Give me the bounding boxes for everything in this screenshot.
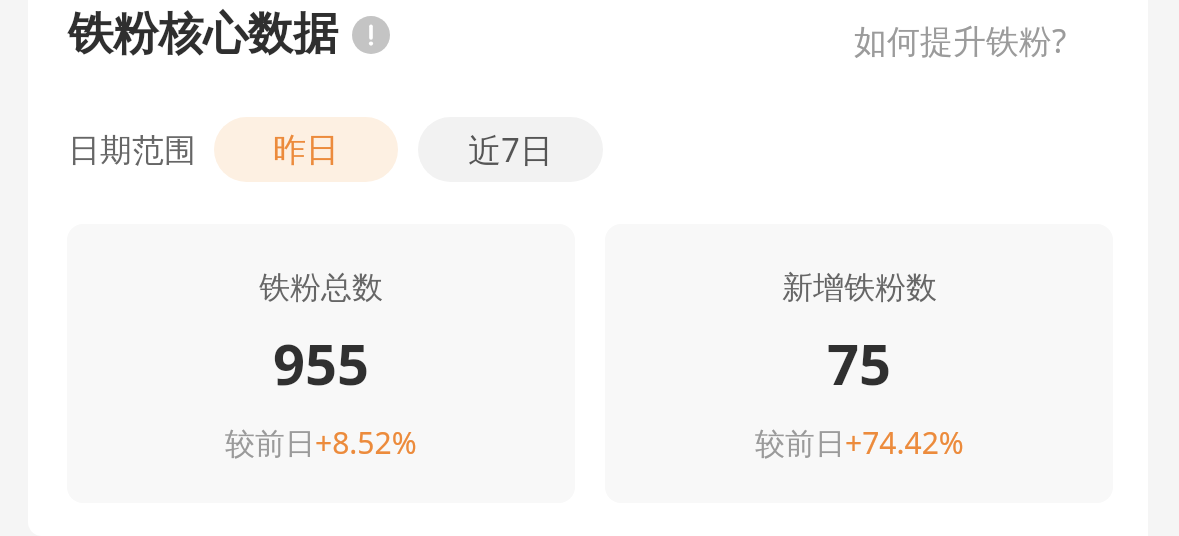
staticText: 日期范围 xyxy=(68,130,196,170)
button[interactable]: 近7日 xyxy=(418,117,603,182)
staticText: 新增铁粉数 xyxy=(782,268,937,307)
button[interactable]: 昨日 xyxy=(214,117,398,182)
staticText: 955 xyxy=(273,325,370,401)
staticText: 铁粉总数 xyxy=(259,268,383,307)
staticText: 75 xyxy=(827,325,892,401)
staticText: 昨日 xyxy=(273,129,339,171)
staticText: 如何提升铁粉? xyxy=(854,18,1067,63)
button[interactable]: 铁粉核心数据 xyxy=(68,6,390,63)
button[interactable]: 新增铁粉数 xyxy=(605,224,1113,503)
button[interactable]: 铁粉总数 xyxy=(67,224,575,503)
staticText: 较前日+8.52% xyxy=(225,422,417,463)
staticText: 近7日 xyxy=(468,127,553,172)
staticText: 铁粉核心数据 xyxy=(68,6,338,63)
button[interactable]: 说明 xyxy=(352,16,390,54)
button[interactable]: 如何提升铁粉? xyxy=(848,14,1073,67)
staticText: 较前日+74.42% xyxy=(755,422,964,463)
